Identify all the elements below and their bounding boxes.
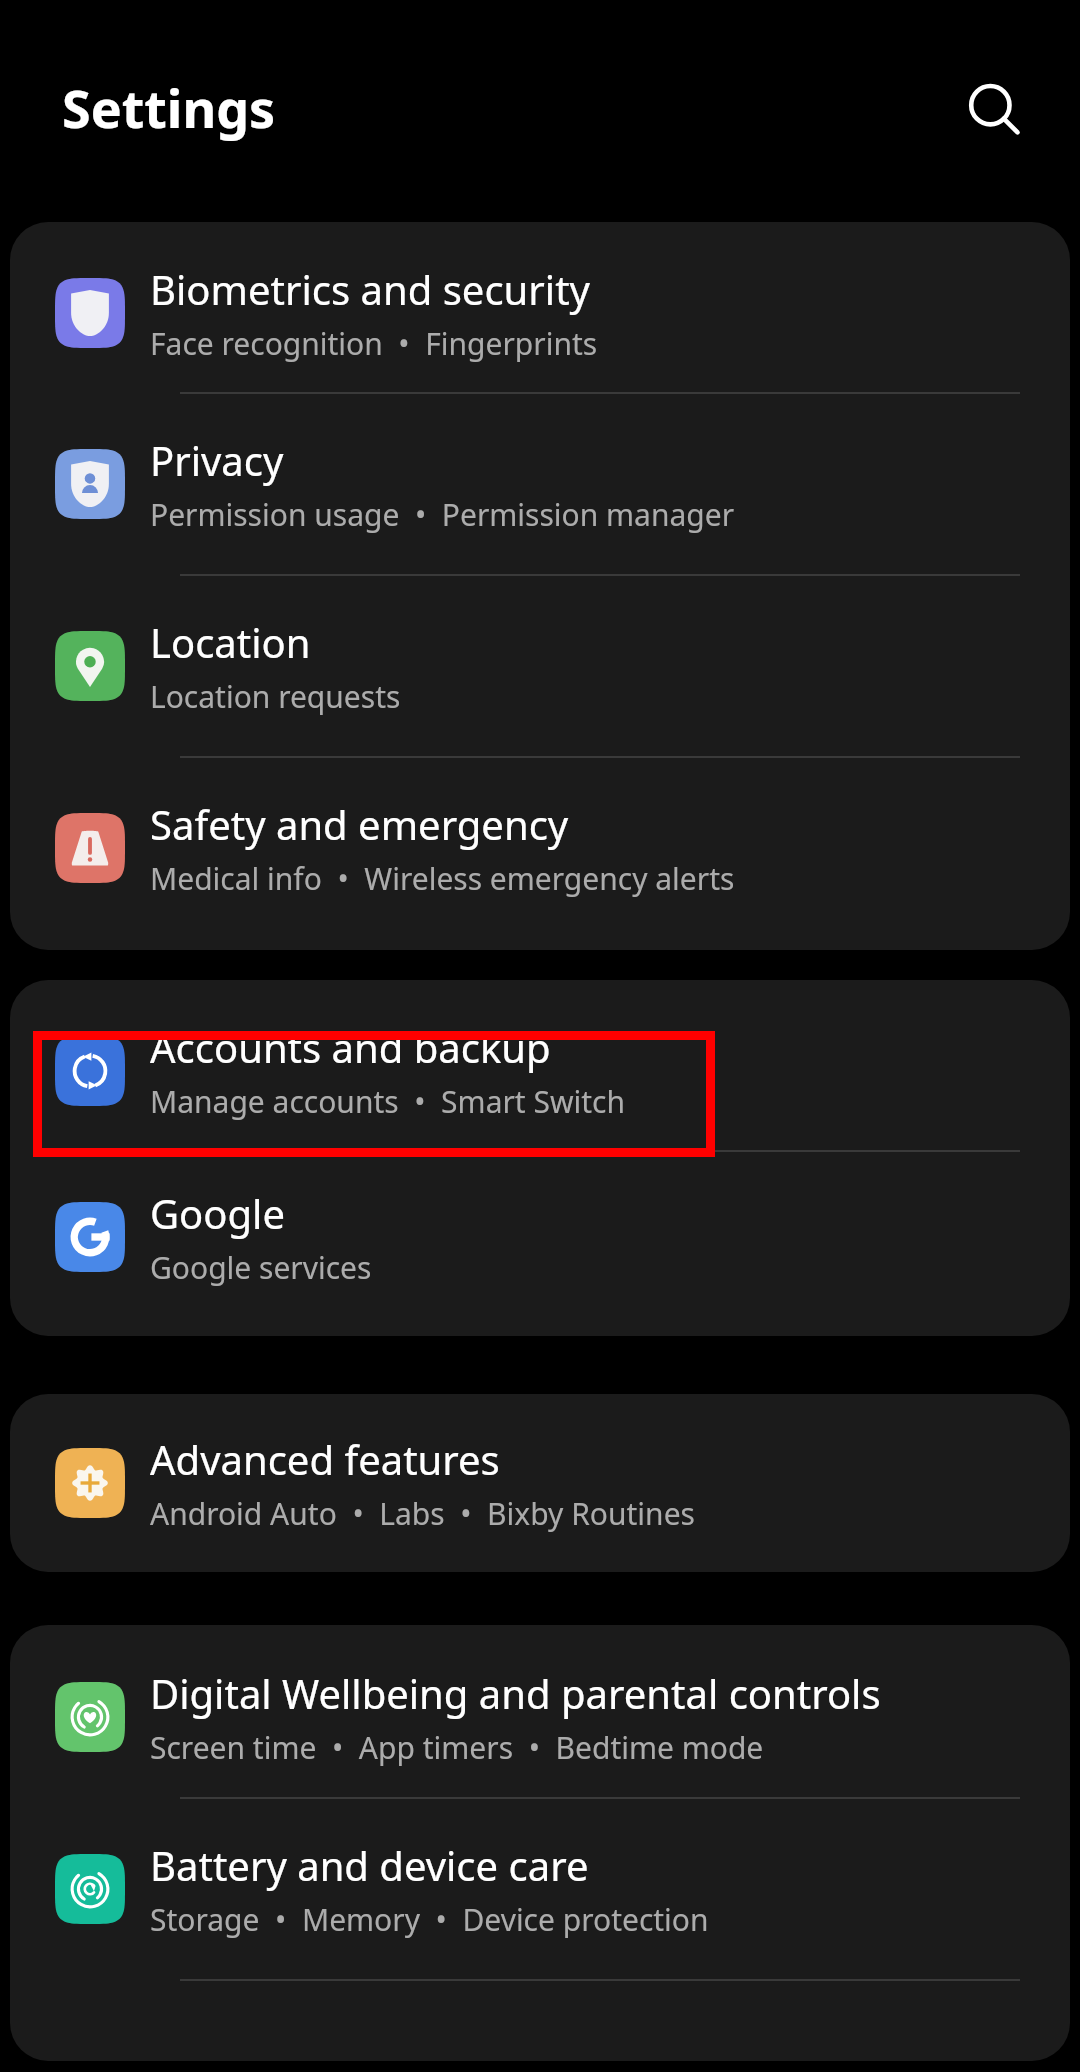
button[interactable]: Location <box>10 576 1070 756</box>
staticText: Screen time • App timers • Bedtime mode <box>150 1727 764 1768</box>
button[interactable]: Search <box>940 56 1050 166</box>
button[interactable]: Biometrics and security <box>10 234 1070 392</box>
staticText: Safety and emergency <box>150 797 569 851</box>
staticText: Battery and device care <box>150 1838 589 1892</box>
button[interactable]: Digital Wellbeing and parental controls <box>10 1637 1070 1797</box>
staticText: Storage • Memory • Device protection <box>150 1899 709 1940</box>
staticText: Settings <box>62 72 276 143</box>
button[interactable]: Advanced features <box>10 1394 1070 1572</box>
staticText: Location requests <box>150 676 401 717</box>
button[interactable]: Privacy <box>10 394 1070 574</box>
staticText: Biometrics and security <box>150 262 590 316</box>
staticText: Manage accounts • Smart Switch <box>150 1081 626 1122</box>
staticText: Medical info • Wireless emergency alerts <box>150 858 735 899</box>
staticText: Face recognition • Fingerprints <box>150 323 598 364</box>
staticText: Permission usage • Permission manager <box>150 494 735 535</box>
staticText: Digital Wellbeing and parental controls <box>150 1666 881 1720</box>
staticText: Google <box>150 1186 285 1240</box>
button[interactable]: Google <box>10 1152 1070 1322</box>
button[interactable]: Accounts and backup <box>10 992 1070 1150</box>
staticText: Privacy <box>150 433 284 487</box>
staticText: Android Auto • Labs • Bixby Routines <box>150 1493 695 1534</box>
staticText: Location <box>150 615 311 669</box>
staticText: Advanced features <box>150 1432 500 1486</box>
staticText: Accounts and backup <box>150 1020 551 1074</box>
button[interactable]: Battery and device care <box>10 1799 1070 1979</box>
button[interactable]: Safety and emergency <box>10 758 1070 938</box>
staticText: Google services <box>150 1247 372 1288</box>
